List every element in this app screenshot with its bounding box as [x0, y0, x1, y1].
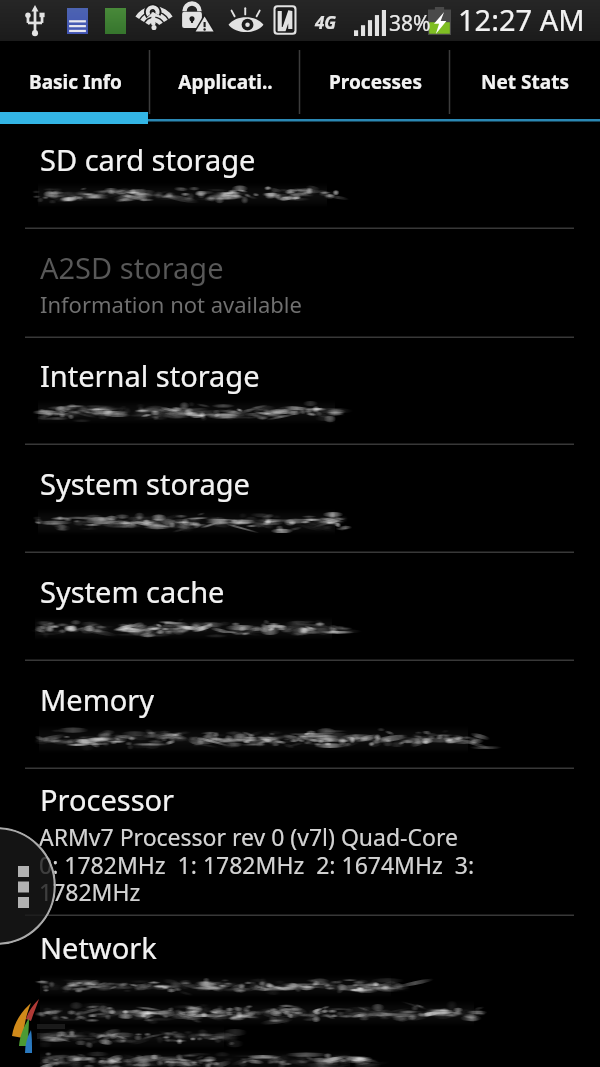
staticText: 4G: [315, 11, 337, 34]
staticText: System cache: [40, 572, 225, 611]
button[interactable]: SD card storage: [0, 125, 600, 229]
staticText: Network: [40, 928, 157, 967]
button[interactable]: Processes: [300, 41, 450, 125]
button[interactable]: Applicati..: [150, 41, 300, 125]
staticText: Internal storage: [40, 356, 260, 395]
staticText: SD card storage: [40, 140, 256, 179]
staticText: Processor: [40, 780, 175, 819]
button[interactable]: System storage: [0, 445, 600, 553]
staticText: Basic Info: [29, 69, 122, 95]
button[interactable]: Basic Info: [0, 41, 150, 125]
button[interactable]: Net Stats: [450, 41, 600, 125]
button[interactable]: Menu: [0, 827, 56, 945]
button[interactable]: Processor: [0, 769, 600, 916]
staticText: Memory: [40, 680, 155, 719]
button[interactable]: System cache: [0, 553, 600, 661]
button[interactable]: Internal storage: [0, 338, 600, 445]
button[interactable]: Network: [0, 916, 600, 1067]
staticText: Net Stats: [481, 69, 569, 95]
staticText: ARMv7 Processor rev 0 (v7l) Quad-Core 0:…: [39, 821, 517, 907]
staticText: System storage: [40, 464, 250, 503]
staticText: Processes: [329, 69, 422, 95]
button[interactable]: Memory: [0, 661, 600, 769]
staticText: 38%: [389, 9, 431, 38]
staticText: Applicati..: [178, 69, 273, 95]
button[interactable]: A2SD storage: [0, 229, 600, 338]
staticText: 12:27 AM: [458, 0, 585, 39]
staticText: Information not available: [40, 289, 302, 319]
staticText: A2SD storage: [40, 248, 224, 287]
